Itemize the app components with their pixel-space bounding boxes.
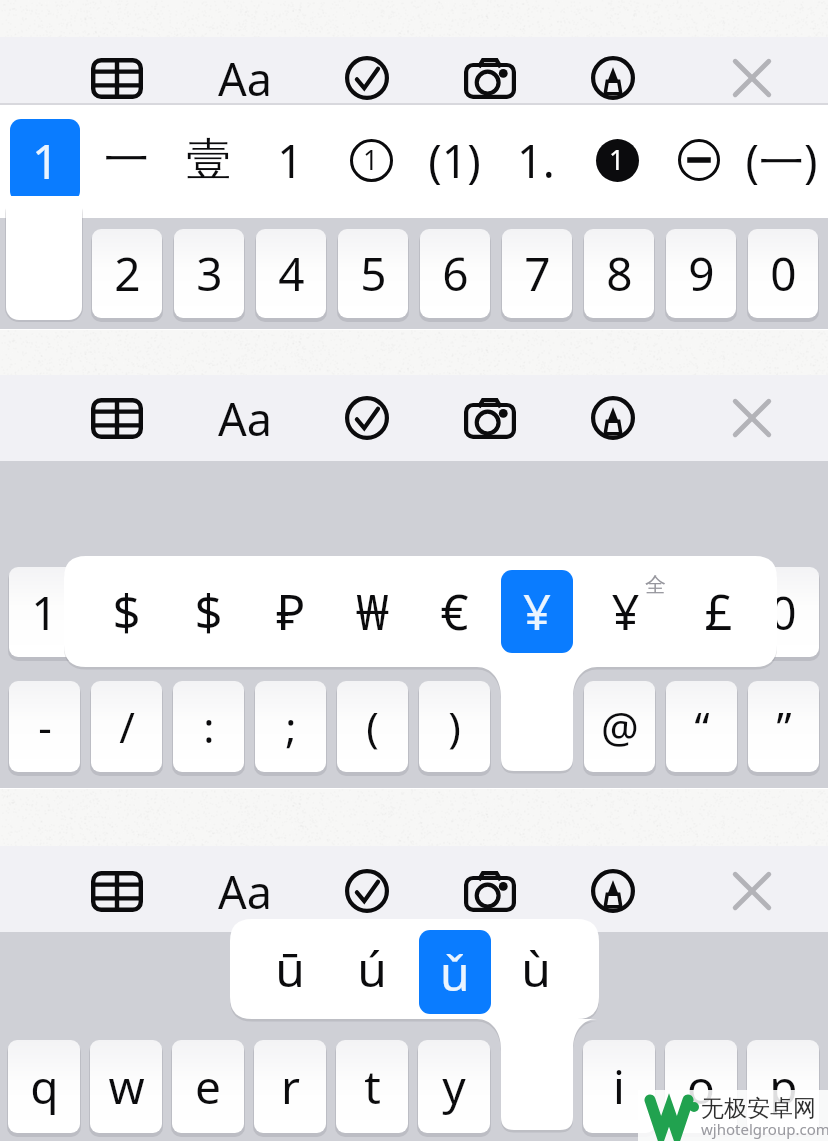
button[interactable]: Table [85, 386, 149, 450]
button[interactable]: o [665, 1040, 737, 1133]
staticText: ¥ [523, 578, 552, 645]
button[interactable]: 5 [338, 229, 408, 318]
button[interactable]: ₽ [250, 570, 330, 653]
staticText: 1 [277, 130, 303, 191]
button[interactable]: 壹 [168, 119, 248, 202]
button[interactable]: € [414, 570, 494, 653]
button[interactable]: Markup pen [581, 859, 645, 923]
staticText: 1 [609, 142, 625, 178]
button[interactable]: 7 [502, 229, 572, 318]
button[interactable]: Check [335, 859, 399, 923]
button[interactable]: @ [584, 681, 655, 772]
staticText: 0 [770, 581, 797, 644]
button[interactable]: 3 [174, 229, 244, 318]
staticText: (一) [745, 130, 818, 191]
button[interactable]: 1 [577, 118, 657, 202]
button[interactable] [659, 118, 739, 202]
button[interactable]: Camera [458, 386, 522, 450]
button[interactable]: 1 [9, 567, 80, 657]
button[interactable]: Text format [213, 859, 277, 923]
staticText: 5 [360, 242, 387, 305]
staticText: ₩ [356, 578, 389, 645]
button[interactable]: / [91, 681, 162, 772]
staticText: p [769, 1055, 798, 1118]
button[interactable]: - [9, 681, 80, 772]
staticText: : [203, 698, 215, 755]
button[interactable]: ¥ [585, 570, 665, 653]
button[interactable]: p [747, 1040, 819, 1133]
button[interactable]: ; [255, 681, 326, 772]
button[interactable]: q [8, 1040, 80, 1133]
button[interactable]: (一) [741, 119, 821, 202]
button[interactable]: Text format [213, 46, 277, 110]
button[interactable]: ₩ [332, 570, 412, 653]
button[interactable]: ú [332, 927, 412, 1010]
staticText: 6 [442, 242, 469, 305]
button[interactable]: Close [720, 859, 784, 923]
button[interactable]: $ [168, 570, 248, 653]
button[interactable]: 0 [748, 567, 819, 657]
button[interactable]: ù [496, 927, 576, 1010]
button[interactable]: £ [678, 570, 758, 653]
staticText: 1 [31, 581, 58, 644]
button[interactable]: Text format [213, 386, 277, 450]
button[interactable]: 1. [496, 119, 576, 202]
button[interactable]: 1 [331, 118, 411, 202]
button[interactable]: 8 [584, 229, 654, 318]
button[interactable]: Close [720, 46, 784, 110]
button[interactable]: Check [335, 46, 399, 110]
button[interactable]: ū [250, 927, 330, 1010]
button[interactable]: Close [720, 386, 784, 450]
button[interactable]: 2 [92, 229, 162, 318]
button[interactable]: Camera [458, 46, 522, 110]
staticText: 全 [645, 572, 666, 598]
button[interactable]: 4 [256, 229, 326, 318]
button[interactable]: i [583, 1040, 655, 1133]
staticText: ¥ [611, 578, 640, 645]
button[interactable]: ǔ [419, 930, 491, 1014]
staticText: ù [521, 936, 551, 1001]
staticText: ₽ [276, 578, 305, 645]
staticText: 3 [196, 242, 223, 305]
button[interactable]: Check [335, 386, 399, 450]
staticText: / [119, 698, 135, 755]
staticText: r [281, 1055, 300, 1118]
button[interactable]: Table [85, 46, 149, 110]
staticText: ) [448, 698, 461, 755]
button[interactable]: 1 [250, 119, 330, 202]
button[interactable]: Camera [458, 859, 522, 923]
staticText: 0 [770, 242, 797, 305]
button[interactable]: Table [85, 859, 149, 923]
staticText: t [364, 1055, 381, 1118]
staticText: ( [366, 698, 379, 755]
button[interactable]: (1) [414, 119, 494, 202]
button[interactable]: 6 [420, 229, 490, 318]
staticText: £ [704, 578, 733, 645]
staticText: 4 [278, 242, 305, 305]
button[interactable]: ¥ [501, 570, 573, 653]
button[interactable]: e [172, 1040, 244, 1133]
staticText: 1 [363, 142, 379, 178]
button[interactable]: Markup pen [581, 46, 645, 110]
button[interactable]: r [254, 1040, 326, 1133]
button[interactable]: 0 [748, 229, 818, 318]
button[interactable]: ( [337, 681, 408, 772]
staticText: 1 [32, 129, 59, 193]
button[interactable]: 一 [86, 119, 166, 202]
staticText: ū [275, 936, 305, 1001]
button[interactable]: : [173, 681, 244, 772]
button[interactable]: t [336, 1040, 408, 1133]
button[interactable]: ” [748, 681, 819, 772]
staticText: ; [285, 698, 297, 755]
staticText: $ [194, 578, 223, 645]
button[interactable]: 1 [10, 119, 80, 202]
button[interactable]: “ [666, 681, 737, 772]
button[interactable]: ) [419, 681, 490, 772]
button[interactable]: 9 [666, 229, 736, 318]
staticText: (1) [428, 130, 481, 191]
button[interactable]: w [90, 1040, 162, 1133]
staticText: ” [776, 698, 792, 755]
button[interactable]: $ [86, 570, 166, 653]
button[interactable]: Markup pen [581, 386, 645, 450]
button[interactable]: y [418, 1040, 490, 1133]
